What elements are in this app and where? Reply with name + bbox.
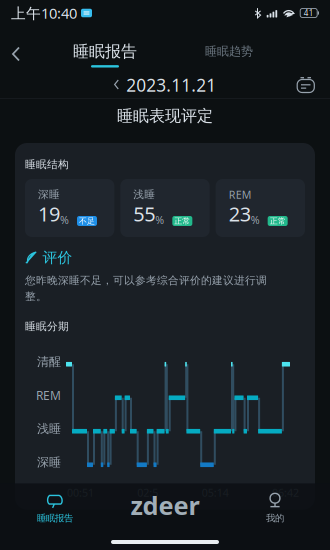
- button[interactable]: Back: [0, 41, 32, 69]
- button[interactable]: 我的: [220, 492, 330, 524]
- staticText: 上午10:40: [11, 3, 77, 23]
- button[interactable]: 睡眠趋势: [205, 44, 253, 65]
- staticText: 整。: [25, 290, 47, 303]
- staticText: 浅睡: [133, 188, 155, 201]
- staticText: 浅睡: [37, 421, 61, 436]
- staticText: zdeer: [130, 488, 199, 522]
- staticText: %: [251, 213, 260, 227]
- staticText: REM: [36, 387, 61, 403]
- staticText: 05:14: [202, 485, 229, 500]
- button[interactable]: 睡眠报告: [73, 41, 137, 68]
- button[interactable]: Previous day: [114, 80, 119, 90]
- staticText: 深睡: [38, 188, 60, 201]
- staticText: %: [155, 213, 164, 227]
- staticText: 睡眠报告: [73, 41, 137, 61]
- staticText: 55: [133, 200, 155, 227]
- staticText: 我的: [266, 512, 284, 524]
- staticText: 2023.11.21: [126, 73, 216, 96]
- staticText: 23: [229, 200, 251, 227]
- staticText: 不足: [79, 216, 95, 226]
- staticText: 深睡: [37, 455, 61, 470]
- staticText: 正常: [174, 216, 190, 226]
- staticText: 正常: [270, 216, 286, 226]
- staticText: 评价: [42, 248, 72, 266]
- staticText: 睡眠分期: [25, 320, 69, 333]
- staticText: 清醒: [37, 354, 61, 369]
- staticText: 02:5: [137, 485, 158, 500]
- staticText: 06:42: [272, 485, 299, 500]
- button[interactable]: 睡眠报告: [0, 492, 110, 524]
- staticText: 您昨晚深睡不足，可以参考综合评价的建议进行调: [25, 274, 267, 287]
- staticText: 睡眠表现评定: [117, 106, 213, 126]
- button[interactable]: Pick date: [296, 75, 316, 94]
- staticText: 19: [38, 200, 60, 227]
- staticText: 睡眠趋势: [205, 44, 253, 59]
- staticText: 睡眠结构: [25, 158, 69, 171]
- staticText: %: [60, 213, 69, 227]
- staticText: REM: [229, 187, 252, 202]
- staticText: 睡眠报告: [37, 512, 73, 524]
- staticText: 41: [304, 8, 314, 18]
- staticText: 00:51: [67, 485, 94, 500]
